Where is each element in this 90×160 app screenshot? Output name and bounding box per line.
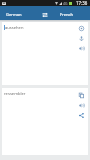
staticText: 17:36 xyxy=(76,0,88,6)
staticText: French xyxy=(60,12,74,18)
button[interactable]: Copy xyxy=(76,90,86,100)
button[interactable]: Swap languages xyxy=(40,10,50,20)
button[interactable]: Share xyxy=(76,110,86,120)
button[interactable]: Voice input xyxy=(76,33,86,43)
button[interactable]: Listen xyxy=(76,100,86,110)
staticText: aussehen xyxy=(5,25,24,31)
button[interactable]: French xyxy=(53,6,80,20)
staticText: German xyxy=(6,12,22,18)
staticText: 4G xyxy=(63,1,68,6)
button[interactable]: Listen xyxy=(76,43,86,53)
button[interactable]: Clear xyxy=(76,23,86,33)
button[interactable]: German xyxy=(0,6,27,20)
staticText: ressembler xyxy=(4,91,26,97)
